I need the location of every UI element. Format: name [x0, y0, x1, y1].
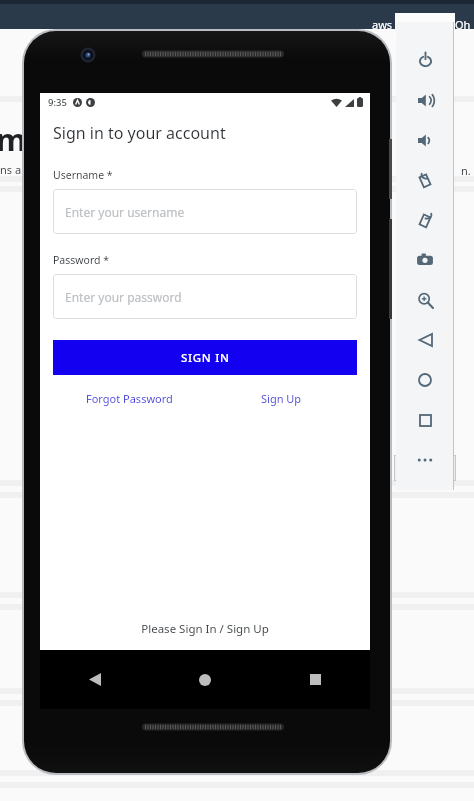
button[interactable]: Rotate left — [403, 160, 447, 200]
button[interactable]: More — [403, 440, 447, 480]
staticText: Sign in to your account — [53, 122, 226, 144]
button[interactable]: Zoom — [403, 280, 447, 320]
staticText: u — [385, 163, 392, 178]
button[interactable]: Enter your username — [53, 189, 357, 234]
staticText: Sign Up — [261, 391, 302, 406]
staticText: n. — [461, 163, 471, 178]
button[interactable]: Close — [429, 18, 447, 36]
staticText: SIGN IN — [181, 350, 230, 366]
staticText: Enter your username — [65, 204, 185, 220]
staticText: Username * — [53, 168, 113, 182]
staticText: Oh — [455, 17, 471, 32]
staticText: Password * — [53, 253, 110, 267]
staticText: ns a — [0, 162, 22, 177]
button[interactable]: Volume down — [403, 120, 447, 160]
button[interactable]: Power — [403, 40, 447, 80]
button[interactable]: Sign Up — [205, 391, 357, 406]
staticText: ma — [0, 118, 45, 160]
button[interactable]: Home — [403, 360, 447, 400]
button[interactable]: Home — [150, 650, 260, 709]
button[interactable]: Screenshot — [403, 240, 447, 280]
button[interactable]: Enter your password — [53, 274, 357, 319]
staticText: Forgot Password — [86, 391, 173, 406]
staticText: Please Sign In / Sign Up — [53, 621, 357, 637]
button[interactable]: Back — [40, 650, 150, 709]
button[interactable]: Forgot Password — [53, 391, 205, 406]
button[interactable]: Minimize — [403, 18, 421, 36]
staticText: aws — [372, 17, 393, 32]
staticText: 9:35 — [48, 96, 67, 109]
staticText: Enter your password — [65, 289, 182, 305]
button[interactable]: Back — [403, 320, 447, 360]
button[interactable]: SIGN IN — [53, 340, 357, 375]
button[interactable]: Rotate right — [403, 200, 447, 240]
button[interactable]: Recent apps — [260, 650, 370, 709]
button[interactable]: Volume up — [403, 80, 447, 120]
button[interactable]: Recent apps — [403, 400, 447, 440]
